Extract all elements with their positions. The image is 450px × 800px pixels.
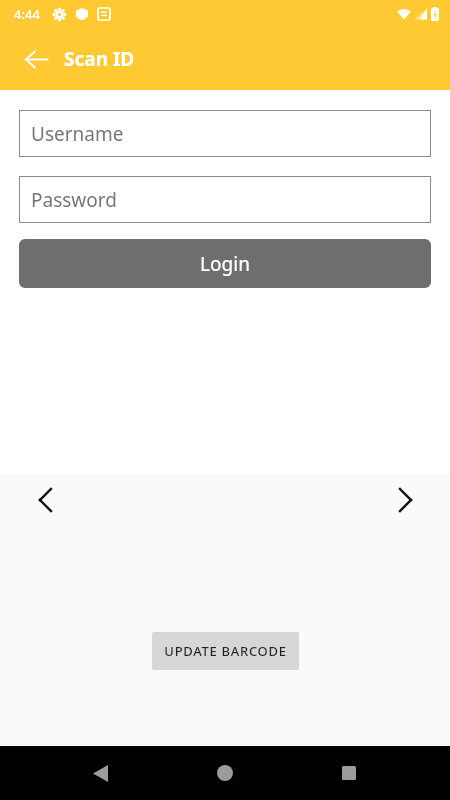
staticText: Username [31,121,124,147]
staticText: Scan ID [64,46,135,72]
button[interactable]: Password [19,176,431,223]
button[interactable]: Previous [28,483,62,517]
button[interactable]: Recent apps [325,746,373,800]
button[interactable]: Username [19,110,431,157]
button[interactable]: UPDATE BARCODE [152,632,299,670]
staticText: 4:44 [14,5,40,23]
staticText: Password [31,187,117,213]
staticText: UPDATE BARCODE [164,642,287,660]
button[interactable]: Back [76,746,124,800]
button[interactable]: Home [201,746,249,800]
staticText: Login [200,251,250,277]
button[interactable]: Back [13,36,59,82]
button[interactable]: Login [19,239,431,288]
button[interactable]: Next [388,483,422,517]
